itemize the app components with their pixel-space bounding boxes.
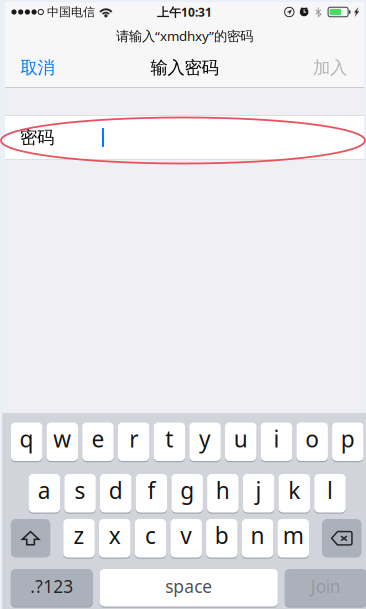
button[interactable]: v — [170, 519, 202, 557]
button[interactable]: 密码 — [5, 115, 364, 160]
staticText: w — [53, 424, 71, 454]
staticText: t — [165, 424, 173, 454]
button[interactable]: .?123 — [11, 569, 93, 606]
button[interactable]: x — [99, 519, 130, 557]
staticText: d — [109, 475, 123, 505]
staticText: q — [19, 424, 33, 454]
button[interactable]: a — [29, 474, 60, 512]
staticText: r — [129, 424, 138, 454]
button[interactable]: 加入 — [303, 50, 357, 85]
staticText: i — [273, 424, 279, 454]
button[interactable]: p — [332, 422, 364, 461]
staticText: c — [145, 520, 156, 550]
button[interactable]: c — [135, 519, 166, 557]
staticText: 中国电信 — [47, 5, 95, 19]
button[interactable]: k — [278, 474, 310, 512]
button[interactable]: z — [63, 519, 95, 557]
staticText: j — [255, 475, 261, 505]
button[interactable]: Delete — [322, 519, 361, 557]
button[interactable]: o — [296, 422, 328, 461]
staticText: 加入 — [313, 57, 347, 78]
button[interactable]: l — [314, 474, 346, 512]
staticText: v — [180, 520, 192, 550]
staticText: h — [216, 475, 230, 505]
staticText: m — [283, 520, 304, 550]
button[interactable]: t — [154, 422, 185, 461]
button[interactable]: space — [100, 569, 278, 606]
staticText: n — [250, 520, 264, 550]
staticText: f — [147, 475, 155, 505]
staticText: a — [38, 475, 51, 505]
button[interactable]: m — [277, 519, 309, 557]
staticText: k — [288, 475, 300, 505]
button[interactable]: j — [243, 474, 274, 512]
button[interactable]: u — [225, 422, 256, 461]
button[interactable]: s — [64, 474, 96, 512]
button[interactable]: w — [46, 422, 78, 461]
button[interactable]: d — [100, 474, 131, 512]
staticText: 上午10:31 — [157, 4, 212, 20]
staticText: Join — [311, 575, 341, 598]
button[interactable]: r — [118, 422, 149, 461]
button[interactable]: i — [261, 422, 292, 461]
button[interactable]: e — [82, 422, 114, 461]
staticText: l — [327, 475, 333, 505]
button[interactable]: y — [189, 422, 221, 461]
staticText: space — [165, 575, 212, 598]
staticText: b — [215, 520, 229, 550]
button[interactable]: h — [207, 474, 239, 512]
button[interactable]: q — [11, 422, 42, 461]
button[interactable]: 取消 — [10, 50, 64, 85]
staticText: 取消 — [20, 57, 54, 78]
staticText: z — [73, 520, 84, 550]
button[interactable]: b — [206, 519, 238, 557]
button[interactable]: g — [171, 474, 203, 512]
button[interactable]: Shift — [11, 519, 50, 557]
staticText: .?123 — [30, 575, 73, 598]
staticText: p — [341, 424, 355, 454]
button[interactable]: n — [242, 519, 273, 557]
staticText: 请输入“xmdhxy”的密码 — [116, 27, 253, 45]
button[interactable]: f — [136, 474, 167, 512]
staticText: x — [109, 520, 121, 550]
staticText: o — [305, 424, 319, 454]
staticText: 输入密码 — [150, 57, 218, 78]
staticText: e — [91, 424, 104, 454]
staticText: 密码 — [20, 127, 54, 148]
staticText: s — [74, 475, 85, 505]
staticText: g — [180, 475, 194, 505]
staticText: u — [234, 424, 248, 454]
button[interactable]: Join — [285, 569, 366, 606]
staticText: y — [199, 424, 211, 454]
